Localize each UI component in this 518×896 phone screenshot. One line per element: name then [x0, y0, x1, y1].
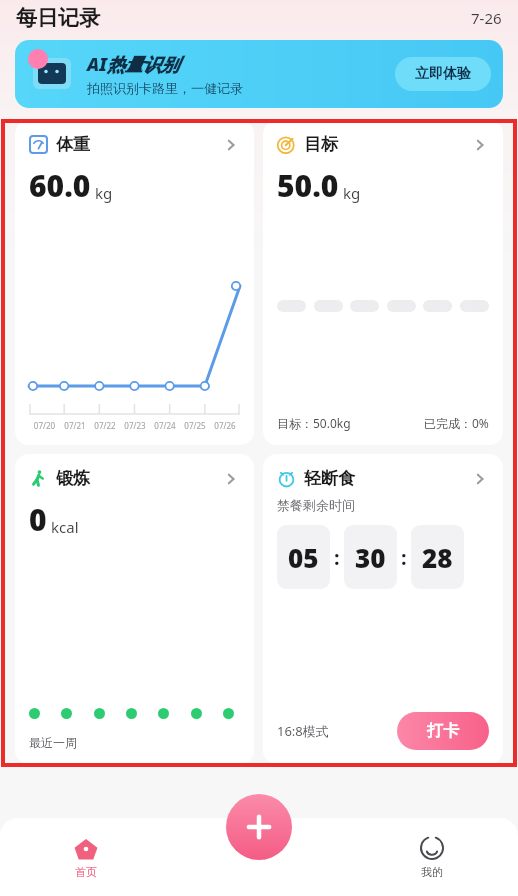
- button[interactable]: 我的: [345, 836, 518, 879]
- staticText: 已完成：0%: [424, 415, 489, 431]
- staticText: 立即体验: [415, 65, 471, 83]
- staticText: 最近一周: [29, 735, 77, 750]
- staticText: 目标：50.0kg: [277, 415, 351, 431]
- button[interactable]: 轻断食: [263, 454, 503, 764]
- staticText: 07/23: [120, 420, 150, 431]
- staticText: 体重: [56, 134, 90, 155]
- staticText: 30: [355, 540, 386, 575]
- staticText: 禁餐剩余时间: [277, 497, 355, 513]
- staticText: 锻炼: [56, 468, 90, 489]
- staticText: 0: [29, 499, 47, 540]
- staticText: kg: [95, 183, 113, 203]
- button[interactable]: 目标: [263, 120, 503, 445]
- staticText: 打卡: [427, 721, 459, 741]
- button[interactable]: Add record: [226, 794, 292, 860]
- staticText: kg: [343, 183, 361, 203]
- staticText: 目标: [304, 134, 338, 155]
- staticText: 05: [288, 540, 319, 575]
- staticText: 拍照识别卡路里，一健记录: [87, 80, 243, 96]
- staticText: 首页: [75, 865, 97, 879]
- staticText: 07/26: [210, 420, 240, 431]
- other: More: [222, 136, 240, 154]
- other: More: [471, 470, 489, 488]
- staticText: 07/22: [90, 420, 120, 431]
- staticText: 07/25: [180, 420, 210, 431]
- button[interactable]: 打卡: [397, 712, 489, 750]
- staticText: 07/24: [150, 420, 180, 431]
- staticText: 每日记录: [16, 5, 100, 31]
- staticText: 16:8模式: [277, 722, 329, 740]
- staticText: 我的: [421, 865, 443, 879]
- staticText: 60.0: [29, 165, 91, 206]
- staticText: 轻断食: [304, 468, 355, 489]
- staticText: 50.0: [277, 165, 339, 206]
- staticText: AI热量识别: [87, 52, 179, 77]
- button[interactable]: 立即体验: [395, 57, 491, 91]
- staticText: :: [401, 544, 407, 571]
- button[interactable]: AI热量识别: [15, 40, 503, 108]
- other: More: [222, 470, 240, 488]
- staticText: kcal: [51, 517, 79, 537]
- staticText: 7-26: [471, 8, 502, 28]
- staticText: :: [334, 544, 340, 571]
- staticText: 07/20: [29, 420, 60, 431]
- button[interactable]: 首页: [0, 836, 172, 879]
- staticText: 07/21: [60, 420, 90, 431]
- other: More: [471, 136, 489, 154]
- staticText: 28: [422, 540, 453, 575]
- button[interactable]: 体重: [15, 120, 254, 445]
- button[interactable]: 锻炼: [15, 454, 254, 764]
